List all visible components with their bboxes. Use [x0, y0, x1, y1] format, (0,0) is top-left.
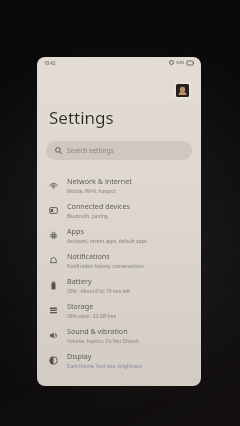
staticText: Notification history, conversations [67, 263, 144, 270]
staticText: 10:42 [44, 60, 56, 66]
staticText: Volume, haptics, Do Not Disturb [67, 338, 140, 345]
staticText: Display [67, 351, 92, 361]
staticText: Dark theme, font size, brightness [67, 363, 142, 370]
staticText: Sound & vibration [67, 326, 128, 336]
button[interactable]: Network & internet [37, 173, 201, 198]
button[interactable]: Sound & vibration [37, 323, 201, 348]
staticText: Battery [67, 276, 92, 286]
staticText: Network & internet [67, 176, 132, 186]
button[interactable]: Apps [37, 223, 201, 248]
staticText: Settings [49, 106, 114, 129]
staticText: Apps [67, 226, 84, 236]
staticText: Assistant, recent apps, default apps [67, 238, 147, 245]
button[interactable]: Display [37, 348, 201, 373]
staticText: Mobile, Wi-Fi, hotspot [67, 188, 116, 195]
staticText: 36% used - 22 GB free [67, 313, 117, 320]
button[interactable]: Battery [37, 273, 201, 298]
staticText: Storage [67, 301, 94, 311]
button[interactable]: Storage [37, 298, 201, 323]
staticText: 30% - About 6 hr, 19 min left [67, 288, 131, 295]
button[interactable]: Account [174, 82, 191, 99]
staticText: Search settings [67, 146, 114, 155]
staticText: Notifications [67, 251, 110, 261]
staticText: Bluetooth, pairing [67, 213, 108, 220]
button[interactable]: Connected devices [37, 198, 201, 223]
button[interactable]: Search settings [46, 141, 192, 160]
staticText: Connected devices [67, 201, 130, 211]
button[interactable]: Notifications [37, 248, 201, 273]
staticText: 30% [176, 60, 185, 66]
